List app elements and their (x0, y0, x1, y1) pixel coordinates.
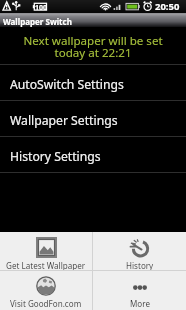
staticText: 20:50 (155, 0, 180, 13)
staticText: Visit GoodFon.com (10, 298, 82, 309)
button[interactable]: Get Latest Wallpaper (0, 232, 92, 270)
button[interactable]: History (93, 232, 186, 270)
button[interactable]: Visit GoodFon.com (0, 271, 92, 310)
button[interactable]: Wallpaper Settings (0, 101, 186, 136)
other: Get Latest Wallpaper (36, 237, 57, 258)
other: Visit GoodFon.com (36, 276, 56, 296)
button[interactable]: History Settings (0, 137, 186, 172)
staticText: Wallpaper Switch (3, 16, 72, 27)
staticText: Next wallpaper will be set today at 22:2… (0, 33, 186, 61)
other: History (129, 237, 150, 258)
button[interactable]: AutoSwitch Settings (0, 65, 186, 100)
staticText: Wallpaper Settings (10, 112, 118, 129)
other: More (130, 276, 150, 296)
staticText: History Settings (10, 148, 101, 165)
staticText: AutoSwitch Settings (10, 76, 124, 93)
staticText: More (130, 298, 150, 309)
staticText: Get Latest Wallpaper (6, 260, 86, 270)
staticText: 100 (35, 3, 48, 13)
staticText: History (126, 260, 154, 270)
button[interactable]: More (93, 271, 186, 310)
